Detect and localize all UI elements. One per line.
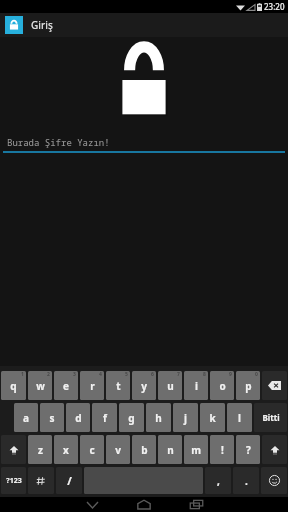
- staticText: e: [63, 379, 69, 393]
- staticText: 2: [47, 371, 50, 378]
- button[interactable]: Burada Şifre Yazın!: [3, 136, 285, 153]
- staticText: .: [245, 474, 248, 488]
- staticText: v: [115, 443, 121, 457]
- button[interactable]: v: [106, 435, 130, 464]
- button[interactable]: f: [92, 403, 117, 432]
- button[interactable]: b: [132, 435, 156, 464]
- button[interactable]: n: [158, 435, 182, 464]
- staticText: !: [221, 443, 224, 457]
- button[interactable]: m: [184, 435, 208, 464]
- staticText: Burada Şifre Yazın!: [7, 136, 110, 148]
- staticText: ,: [217, 474, 220, 488]
- staticText: s: [49, 411, 55, 425]
- staticText: i: [195, 379, 198, 393]
- button[interactable]: e: [54, 371, 78, 400]
- button[interactable]: ?123: [1, 467, 26, 494]
- staticText: p: [245, 379, 252, 393]
- button[interactable]: Home: [122, 497, 166, 512]
- button[interactable]: z: [28, 435, 52, 464]
- staticText: m: [191, 443, 201, 457]
- button[interactable]: .: [233, 467, 259, 494]
- button[interactable]: Backspace: [262, 371, 287, 400]
- staticText: w: [36, 379, 45, 393]
- staticText: 0: [255, 371, 258, 378]
- staticText: q: [10, 379, 17, 393]
- button[interactable]: p: [236, 371, 260, 400]
- staticText: 23:20: [264, 1, 285, 12]
- staticText: Bitti: [262, 412, 280, 423]
- button[interactable]: y: [132, 371, 156, 400]
- button[interactable]: Keyboard settings: [28, 467, 54, 494]
- button[interactable]: ?: [236, 435, 260, 464]
- button[interactable]: Shift: [1, 435, 26, 464]
- button[interactable]: Bitti: [254, 403, 287, 432]
- button[interactable]: o: [210, 371, 234, 400]
- button[interactable]: App icon: [5, 16, 23, 34]
- button[interactable]: d: [66, 403, 90, 432]
- button[interactable]: q: [1, 371, 26, 400]
- button[interactable]: Emoji: [261, 467, 287, 494]
- button[interactable]: t: [106, 371, 130, 400]
- staticText: l: [238, 411, 241, 425]
- staticText: b: [141, 443, 148, 457]
- staticText: 8: [203, 371, 206, 378]
- button[interactable]: r: [80, 371, 104, 400]
- staticText: ?123: [6, 476, 22, 486]
- staticText: x: [63, 443, 69, 457]
- button[interactable]: k: [200, 403, 225, 432]
- staticText: 4: [99, 371, 102, 378]
- staticText: h: [155, 411, 162, 425]
- button[interactable]: c: [80, 435, 104, 464]
- staticText: 1: [21, 371, 24, 378]
- staticText: 5: [125, 371, 128, 378]
- button[interactable]: i: [184, 371, 208, 400]
- staticText: r: [90, 379, 95, 393]
- staticText: u: [167, 379, 174, 393]
- staticText: Giriş: [31, 18, 53, 32]
- button[interactable]: /: [56, 467, 82, 494]
- staticText: j: [184, 411, 187, 425]
- staticText: d: [75, 411, 82, 425]
- staticText: /: [67, 473, 72, 488]
- staticText: a: [23, 411, 29, 425]
- button[interactable]: s: [40, 403, 64, 432]
- staticText: n: [167, 443, 174, 457]
- staticText: 9: [229, 371, 232, 378]
- button[interactable]: g: [119, 403, 144, 432]
- staticText: t: [116, 379, 121, 393]
- staticText: o: [219, 379, 226, 393]
- staticText: 6: [151, 371, 154, 378]
- staticText: 3: [73, 371, 76, 378]
- button[interactable]: a: [14, 403, 38, 432]
- button[interactable]: Recent apps: [174, 497, 218, 512]
- staticText: z: [38, 443, 43, 457]
- staticText: g: [128, 411, 135, 425]
- staticText: y: [141, 379, 147, 393]
- button[interactable]: Shift: [262, 435, 287, 464]
- button[interactable]: ,: [205, 467, 231, 494]
- staticText: 7: [177, 371, 180, 378]
- staticText: c: [89, 443, 95, 457]
- button[interactable]: w: [28, 371, 52, 400]
- staticText: k: [209, 411, 216, 425]
- button[interactable]: Back: [70, 497, 114, 512]
- button[interactable]: x: [54, 435, 78, 464]
- staticText: ?: [246, 443, 251, 457]
- button[interactable]: h: [146, 403, 171, 432]
- button[interactable]: j: [173, 403, 198, 432]
- button[interactable]: !: [210, 435, 234, 464]
- staticText: f: [103, 411, 107, 425]
- button[interactable]: l: [227, 403, 252, 432]
- button[interactable]: u: [158, 371, 182, 400]
